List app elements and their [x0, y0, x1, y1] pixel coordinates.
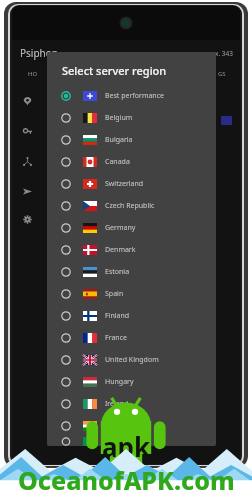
button[interactable]: India	[47, 415, 216, 437]
button[interactable]: Settings	[20, 212, 34, 226]
staticText: GS	[218, 70, 226, 78]
staticText: apk	[102, 429, 151, 464]
button[interactable]: France	[47, 327, 216, 349]
staticText: Estonia	[105, 267, 130, 277]
button[interactable]: Flag	[221, 116, 232, 125]
button[interactable]: Spain	[47, 283, 216, 305]
staticText: x. 343	[215, 49, 234, 58]
staticText: Select server region	[62, 63, 167, 78]
button[interactable]: Estonia	[47, 261, 216, 283]
staticText: Belgium	[105, 113, 133, 123]
staticText: France	[105, 333, 127, 343]
button[interactable]: VPN key	[20, 124, 34, 138]
button[interactable]: Italy	[47, 437, 216, 446]
button[interactable]: Canada	[47, 151, 216, 173]
button[interactable]: Germany	[47, 217, 216, 239]
staticText: Italy	[105, 437, 120, 446]
staticText: Best performance	[105, 91, 164, 101]
button[interactable]: Bulgaria	[47, 129, 216, 151]
button[interactable]: Location	[20, 94, 34, 108]
button[interactable]: Ireland	[47, 393, 216, 415]
staticText: HO	[28, 70, 38, 78]
button[interactable]: Switzerland	[47, 173, 216, 195]
staticText: Switzerland	[105, 179, 144, 189]
staticText: Hungary	[105, 377, 134, 387]
button[interactable]: Network	[20, 154, 34, 168]
button[interactable]: Denmark	[47, 239, 216, 261]
button[interactable]: United Kingdom	[47, 349, 216, 371]
staticText: Ireland	[105, 399, 129, 409]
staticText: Bulgaria	[105, 135, 133, 145]
button[interactable]: Send	[20, 184, 34, 198]
staticText: Czech Republic	[105, 201, 155, 211]
staticText: United Kingdom	[105, 355, 159, 365]
staticText: Denmark	[105, 245, 136, 255]
staticText: Finland	[105, 311, 130, 321]
button[interactable]: Best performance	[47, 85, 216, 107]
button[interactable]: Hungary	[47, 371, 216, 393]
staticText: Canada	[105, 157, 130, 167]
button[interactable]: Belgium	[47, 107, 216, 129]
button[interactable]: Czech Republic	[47, 195, 216, 217]
staticText: OceanofAPK.com	[18, 463, 235, 497]
button[interactable]: Finland	[47, 305, 216, 327]
staticText: Germany	[105, 223, 136, 233]
staticText: Psiphon	[20, 46, 58, 60]
staticText: Spain	[105, 289, 124, 299]
